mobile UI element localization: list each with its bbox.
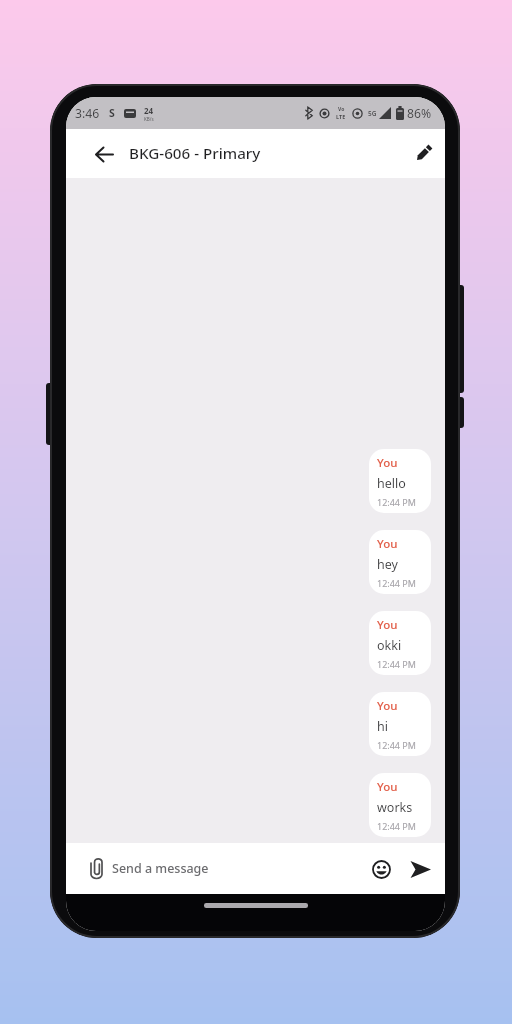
button[interactable] <box>408 857 432 881</box>
staticText: S <box>109 106 115 120</box>
staticText: hello <box>377 475 406 492</box>
staticText: works <box>377 799 413 816</box>
staticText: 12:44 PM <box>377 658 416 670</box>
staticText: You <box>377 536 398 552</box>
staticText: 5G <box>368 109 377 118</box>
staticText: Vo <box>338 106 345 113</box>
button[interactable] <box>410 141 436 167</box>
button[interactable]: You <box>369 611 431 675</box>
staticText: KB/s <box>144 116 154 122</box>
button[interactable] <box>370 858 392 880</box>
staticText: You <box>377 455 398 471</box>
button[interactable]: You <box>369 449 431 513</box>
staticText: LTE <box>336 113 346 120</box>
staticText: hi <box>377 718 388 735</box>
staticText: hey <box>377 556 398 573</box>
staticText: 3:46 <box>75 105 100 122</box>
staticText: You <box>377 617 398 633</box>
button[interactable] <box>92 142 116 166</box>
button[interactable]: You <box>369 530 431 594</box>
button[interactable]: You <box>369 692 431 756</box>
staticText: You <box>377 698 398 714</box>
staticText: BKG-606 - Primary <box>129 143 261 164</box>
button[interactable]: Send a message <box>112 860 370 877</box>
staticText: 86% <box>407 105 432 122</box>
staticText: 24 <box>144 105 154 116</box>
staticText: 12:44 PM <box>377 496 416 508</box>
staticText: Send a message <box>112 860 209 877</box>
staticText: 12:44 PM <box>377 577 416 589</box>
staticText: You <box>377 779 398 795</box>
staticText: 12:44 PM <box>377 820 416 832</box>
staticText: okki <box>377 637 402 654</box>
staticText: 12:44 PM <box>377 739 416 751</box>
button[interactable]: You <box>369 773 431 837</box>
